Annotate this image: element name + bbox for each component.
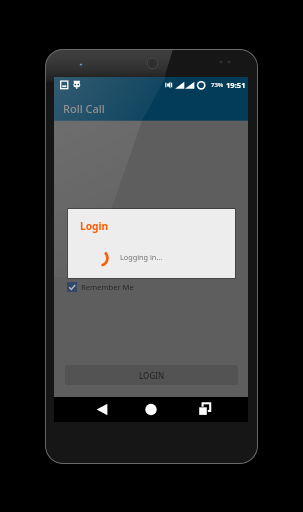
staticText: Remember Me [81, 282, 134, 292]
staticText: LOGIN [139, 370, 165, 381]
button[interactable]: Back [78, 397, 126, 422]
button[interactable]: Home [127, 397, 175, 422]
staticText: 19:51 [226, 80, 246, 90]
staticText: 73% [211, 81, 224, 89]
button[interactable]: Remember Me [67, 282, 134, 292]
button[interactable]: Recent apps [181, 397, 229, 422]
staticText: Login [80, 219, 109, 233]
staticText: Logging in... [120, 252, 163, 262]
button[interactable]: LOGIN [65, 365, 238, 385]
staticText: Roll Call [63, 101, 105, 116]
